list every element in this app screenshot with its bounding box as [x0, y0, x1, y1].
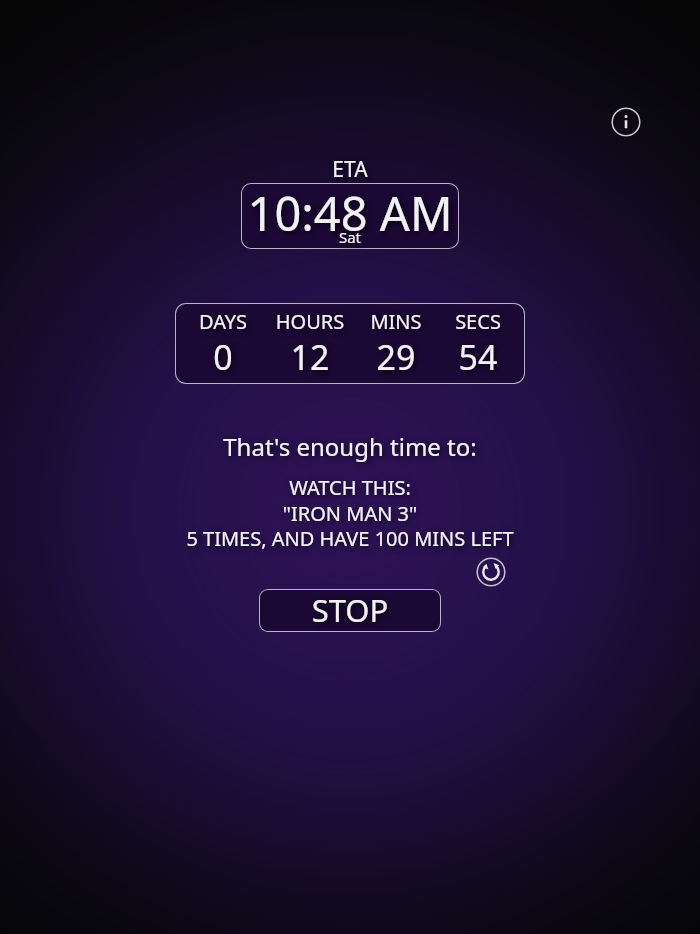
- staticText: 10:48 AM: [241, 183, 459, 245]
- staticText: DAYS: [181, 308, 265, 335]
- button[interactable]: 10:48 AM: [241, 183, 459, 249]
- staticText: HOURS: [265, 308, 355, 335]
- staticText: That's enough time to:: [0, 430, 700, 463]
- staticText: 54: [437, 334, 519, 378]
- staticText: SECS: [437, 308, 519, 335]
- staticText: MINS: [355, 308, 437, 335]
- staticText: 12: [265, 334, 355, 378]
- staticText: STOP: [259, 589, 441, 631]
- staticText: ETA: [0, 155, 700, 184]
- staticText: WATCH THIS: "IRON MAN 3" 5 TIMES, AND HA…: [0, 474, 700, 551]
- button[interactable]: Refresh: [476, 557, 506, 587]
- staticText: 29: [355, 334, 437, 378]
- button[interactable]: Info: [611, 107, 641, 137]
- staticText: Sat: [241, 227, 459, 247]
- button[interactable]: DAYS: [175, 303, 525, 384]
- staticText: 0: [181, 334, 265, 378]
- button[interactable]: STOP: [259, 589, 441, 632]
